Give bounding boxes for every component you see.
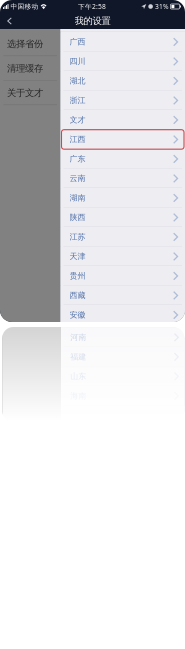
button[interactable]: 湖南: [60, 188, 185, 208]
button[interactable]: 关于文才: [0, 81, 60, 105]
staticText: 海南: [70, 391, 86, 401]
staticText: 云南: [69, 173, 85, 183]
staticText: 湖北: [69, 76, 85, 86]
staticText: 陕西: [69, 212, 85, 222]
button[interactable]: 选择省份: [0, 32, 60, 56]
staticText: 我的设置: [74, 15, 110, 27]
button[interactable]: 江苏: [60, 227, 185, 247]
staticText: 浙江: [69, 95, 85, 105]
staticText: 安徽: [69, 310, 85, 320]
staticText: 河南: [70, 332, 86, 342]
button[interactable]: 浙江: [60, 91, 185, 110]
staticText: 四川: [69, 56, 85, 66]
staticText: 山东: [70, 371, 86, 381]
staticText: 广西: [69, 37, 85, 47]
staticText: 河南: [69, 329, 85, 339]
staticText: 山东: [69, 368, 85, 378]
button[interactable]: 清理缓存: [0, 56, 60, 81]
button[interactable]: 福建: [60, 344, 185, 364]
staticText: 海南: [69, 388, 85, 398]
button[interactable]: 河南: [61, 328, 185, 347]
staticText: 江西: [69, 134, 85, 144]
button[interactable]: 四川: [60, 52, 185, 71]
staticText: 清理缓存: [7, 63, 43, 74]
staticText: 江苏: [69, 232, 85, 242]
staticText: 下午2:58: [78, 2, 106, 11]
staticText: 选择省份: [7, 38, 43, 50]
staticText: 福建: [69, 349, 85, 359]
button[interactable]: 河南: [60, 325, 185, 344]
button[interactable]: 湖北: [60, 71, 185, 91]
staticText: 福建: [70, 352, 86, 362]
staticText: 文才: [69, 115, 85, 125]
staticText: 西藏: [69, 290, 85, 300]
staticText: 湖南: [69, 193, 85, 203]
button[interactable]: 陕西: [60, 208, 185, 227]
staticText: 中国移动: [8, 2, 40, 11]
staticText: 31%: [155, 2, 169, 11]
button[interactable]: 广西: [60, 32, 185, 52]
button[interactable]: 福建: [61, 347, 185, 367]
button[interactable]: 文才: [60, 110, 185, 130]
staticText: 广东: [69, 154, 85, 164]
button[interactable]: 西藏: [60, 286, 185, 305]
staticText: 贵州: [69, 271, 85, 281]
button[interactable]: 云南: [60, 169, 185, 188]
staticText: 关于文才: [7, 87, 43, 99]
staticText: 天津: [69, 251, 85, 261]
button[interactable]: 广东: [60, 149, 185, 169]
button[interactable]: Back: [0, 13, 21, 29]
button[interactable]: 江西: [60, 130, 185, 149]
button[interactable]: 贵州: [60, 266, 185, 286]
button[interactable]: 天津: [60, 247, 185, 266]
button[interactable]: 安徽: [60, 305, 185, 325]
